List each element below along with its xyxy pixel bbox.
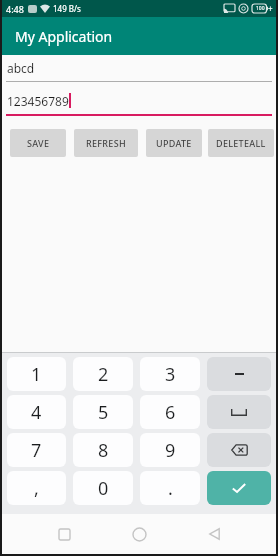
button[interactable] [201, 521, 227, 547]
staticText: 5 [98, 400, 109, 425]
button[interactable]: UPDATE [146, 129, 202, 157]
button[interactable]: 3 [140, 357, 200, 391]
button[interactable] [207, 395, 271, 429]
button[interactable]: . [140, 471, 200, 505]
button[interactable]: , [7, 471, 66, 505]
button[interactable] [51, 521, 77, 547]
button[interactable] [207, 471, 271, 505]
button[interactable]: 5 [73, 395, 133, 429]
button[interactable]: 1 [7, 357, 66, 391]
staticText: 1 [31, 362, 42, 387]
staticText: 123456789 [7, 93, 69, 109]
button[interactable]: 0 [73, 471, 133, 505]
button[interactable]: 123456789 [2, 88, 276, 116]
button[interactable] [126, 521, 152, 547]
staticText: 4 [31, 400, 42, 425]
button[interactable]: abcd [2, 55, 276, 82]
button[interactable] [207, 357, 271, 391]
staticText: 2 [98, 362, 109, 387]
staticText: 3 [165, 362, 176, 387]
staticText: + [268, 3, 273, 14]
button[interactable]: 9 [140, 433, 200, 467]
staticText: , [34, 476, 39, 501]
staticText: abcd [7, 60, 35, 76]
staticText: 8 [98, 438, 109, 463]
staticText: 7 [31, 438, 42, 463]
staticText: DELETEALL [216, 137, 266, 149]
button[interactable] [207, 433, 271, 467]
staticText: 149 B/s [53, 3, 81, 14]
staticText: 0 [98, 476, 109, 501]
button[interactable]: 4 [7, 395, 66, 429]
staticText: 6 [165, 400, 176, 425]
button[interactable]: 2 [73, 357, 133, 391]
button[interactable]: SAVE [10, 129, 66, 157]
staticText: 9 [165, 438, 176, 463]
staticText: 100 [256, 5, 265, 12]
staticText: . [168, 476, 173, 501]
staticText: 4:48 [6, 3, 24, 15]
button[interactable]: 7 [7, 433, 66, 467]
staticText: SAVE [27, 137, 50, 149]
button[interactable]: 8 [73, 433, 133, 467]
button[interactable]: 6 [140, 395, 200, 429]
button[interactable]: DELETEALL [208, 129, 274, 157]
button[interactable]: REFRESH [74, 129, 138, 157]
staticText: REFRESH [86, 137, 126, 149]
staticText: My Application [15, 27, 113, 46]
staticText: UPDATE [156, 137, 192, 149]
